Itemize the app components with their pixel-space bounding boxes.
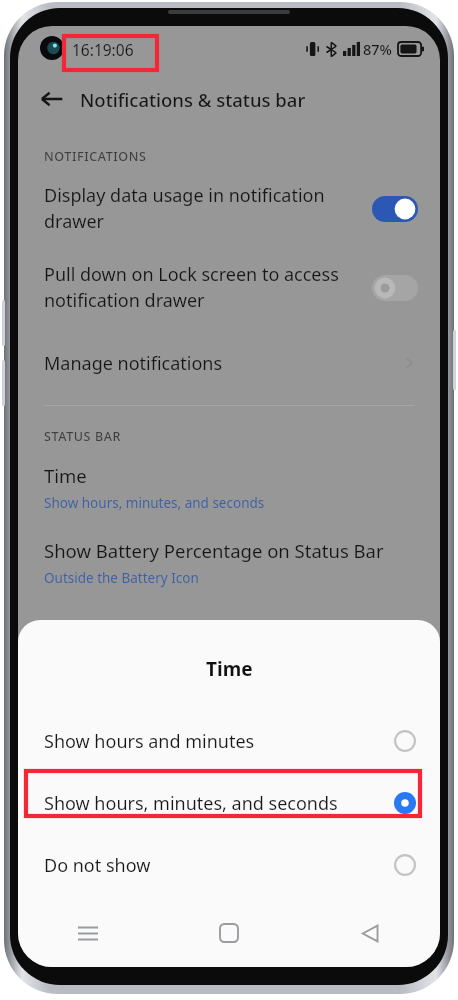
staticText: 87%: [363, 39, 392, 59]
staticText: STATUS BAR: [44, 428, 121, 445]
staticText: Show hours, minutes, and seconds: [44, 494, 265, 512]
button[interactable]: Home: [207, 911, 251, 955]
staticText: Show Battery Percentage on Status Bar: [44, 538, 384, 563]
button[interactable]: Show hours and minutes: [18, 710, 440, 772]
button[interactable]: Recent apps: [66, 911, 110, 955]
button[interactable]: Time: [18, 463, 440, 512]
button[interactable]: Show hours, minutes, and seconds: [18, 772, 440, 834]
staticText: Show hours and minutes: [44, 729, 394, 754]
staticText: Manage notifications: [44, 351, 400, 376]
button[interactable]: Do not show: [18, 834, 440, 896]
staticText: 16:19:06: [72, 39, 134, 60]
button[interactable]: Manage notifications: [18, 343, 440, 383]
staticText: Outside the Battery Icon: [44, 569, 199, 587]
button[interactable]: Pull down on Lock screen to access notif…: [18, 262, 440, 313]
button[interactable]: Show Battery Percentage on Status Bar: [18, 538, 440, 587]
staticText: NOTIFICATIONS: [44, 148, 147, 165]
staticText: Show hours, minutes, and seconds: [44, 791, 394, 816]
staticText: Notifications & status bar: [80, 87, 306, 112]
staticText: Time: [206, 656, 253, 682]
staticText: Display data usage in notification drawe…: [44, 183, 372, 234]
button[interactable]: Display data usage in notification drawe…: [18, 183, 440, 234]
staticText: Pull down on Lock screen to access notif…: [44, 262, 372, 313]
staticText: Time: [44, 463, 87, 488]
staticText: Do not show: [44, 853, 394, 878]
button[interactable]: Back: [30, 77, 74, 121]
button[interactable]: Back: [348, 911, 392, 955]
